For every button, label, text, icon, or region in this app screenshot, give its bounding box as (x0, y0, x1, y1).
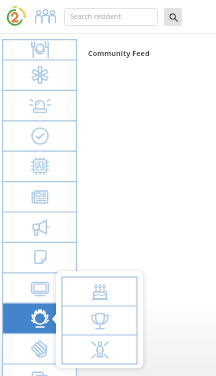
button[interactable]: Alerts (3, 90, 77, 120)
staticText: Search resident (70, 12, 121, 22)
button[interactable]: Tasks (3, 121, 77, 151)
button[interactable]: Wellness (3, 60, 77, 90)
button[interactable]: Awards (62, 306, 137, 335)
button[interactable]: Milestones (62, 335, 137, 364)
button[interactable]: Dining (3, 39, 77, 60)
staticText: Community Feed (88, 48, 150, 58)
button[interactable]: Celebrations (3, 303, 77, 333)
button[interactable]: News (3, 182, 77, 212)
button[interactable]: Media (3, 273, 77, 303)
other: Logo (3, 4, 28, 29)
button[interactable]: Search (164, 8, 182, 26)
button[interactable]: Greetings (3, 334, 77, 364)
button[interactable]: Notes (3, 242, 77, 272)
button[interactable]: AI Assistant (3, 151, 77, 181)
button[interactable]: Residents (35, 9, 56, 24)
button[interactable]: Announcements (3, 212, 77, 242)
button[interactable]: More (3, 364, 77, 376)
button[interactable]: Search resident (64, 8, 158, 26)
button[interactable]: Birthdays (62, 277, 137, 306)
